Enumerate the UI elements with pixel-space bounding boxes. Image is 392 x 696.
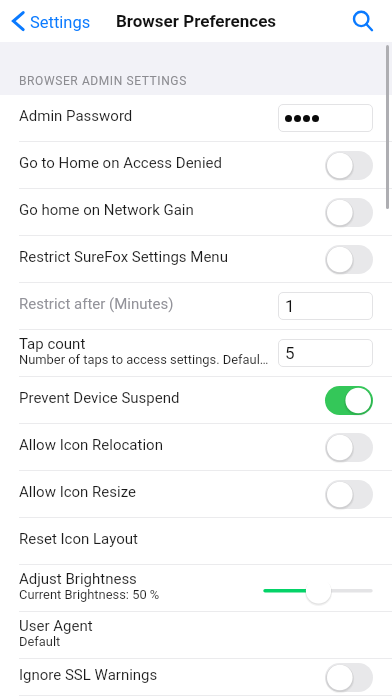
button[interactable] (325, 245, 373, 274)
button[interactable] (325, 480, 373, 509)
button[interactable]: Admin Password (0, 95, 392, 142)
staticText: Restrict SureFox Settings Menu (19, 248, 228, 266)
button[interactable] (325, 386, 373, 415)
staticText: Settings (30, 13, 91, 32)
button[interactable]: Adjust Brightness (0, 565, 392, 612)
staticText: 1 (285, 296, 295, 316)
button[interactable]: User Agent (0, 612, 392, 659)
button[interactable]: Tap count (0, 330, 392, 377)
staticText: Tap count (19, 335, 86, 353)
staticText: Browser Preferences (116, 11, 277, 31)
staticText: Allow Icon Relocation (19, 436, 163, 454)
staticText: BROWSER ADMIN SETTINGS (19, 74, 187, 88)
button[interactable]: Allow Icon Resize (0, 471, 392, 518)
staticText: Restrict after (Minutes) (19, 295, 174, 313)
button[interactable]: Go to Home on Access Denied (0, 142, 392, 189)
button[interactable]: Restrict after (Minutes) (0, 283, 392, 330)
button[interactable] (325, 151, 373, 180)
button[interactable]: Restrict SureFox Settings Menu (0, 236, 392, 283)
button[interactable]: Settings (0, 0, 100, 42)
staticText: Go to Home on Access Denied (19, 154, 222, 172)
button[interactable]: Go home on Network Gain (0, 189, 392, 236)
staticText: User Agent (19, 617, 93, 635)
staticText: Prevent Device Suspend (19, 389, 180, 407)
staticText: Reset Icon Layout (19, 530, 138, 548)
button[interactable] (325, 663, 373, 692)
staticText: Current Brightness: 50 % (19, 587, 160, 602)
staticText: 5 (285, 343, 295, 363)
staticText: Allow Icon Resize (19, 483, 136, 501)
button[interactable] (325, 198, 373, 227)
button[interactable]: Ignore SSL Warnings (0, 659, 392, 696)
button[interactable]: Search (344, 0, 392, 42)
button[interactable]: Allow Icon Relocation (0, 424, 392, 471)
button[interactable]: Prevent Device Suspend (0, 377, 392, 424)
button[interactable]: Reset Icon Layout (0, 518, 392, 565)
staticText: Adjust Brightness (19, 570, 137, 588)
staticText: Admin Password (19, 107, 133, 125)
staticText: Ignore SSL Warnings (19, 666, 158, 684)
staticText: Default (19, 634, 61, 649)
staticText: Go home on Network Gain (19, 201, 194, 219)
button[interactable] (325, 433, 373, 462)
staticText: Number of taps to access settings. Defau… (19, 352, 269, 367)
